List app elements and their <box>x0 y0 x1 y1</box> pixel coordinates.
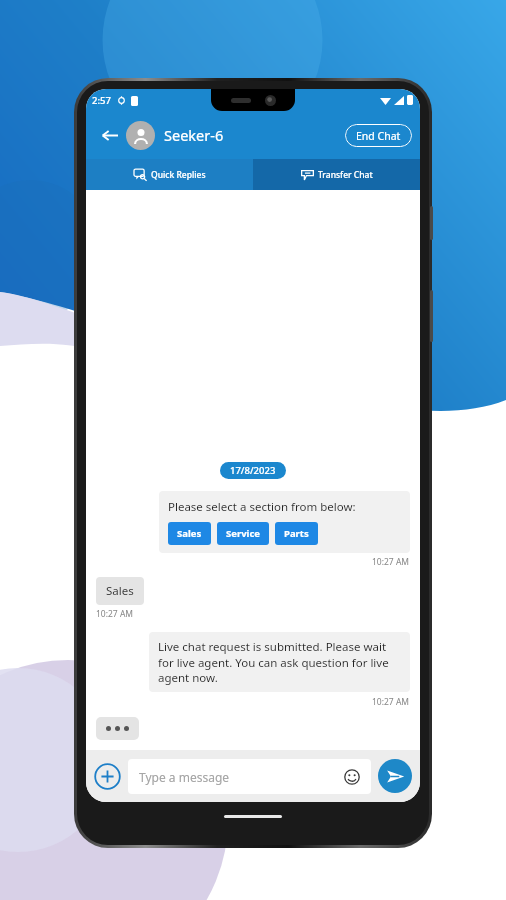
staticText: 17/8/2023 <box>230 464 276 477</box>
staticText: End Chat <box>356 129 401 143</box>
button[interactable]: Send <box>378 759 412 793</box>
button[interactable]: End Chat <box>345 124 412 147</box>
button[interactable]: Type a message <box>128 759 371 794</box>
button[interactable] <box>126 121 155 150</box>
staticText: Quick Replies <box>151 169 206 181</box>
button[interactable]: Add attachment <box>94 763 121 790</box>
staticText: Please select a section from below: <box>168 499 356 515</box>
button[interactable]: Service <box>217 522 269 545</box>
button[interactable]: Quick Replies <box>86 159 253 190</box>
staticText: 10:27 AM <box>96 608 134 620</box>
button[interactable]: Parts <box>275 522 318 545</box>
staticText: 2:57 <box>92 94 111 107</box>
staticText: 10:27 AM <box>372 556 410 568</box>
button[interactable]: Transfer Chat <box>253 159 420 190</box>
staticText: Sales <box>106 583 134 599</box>
button[interactable]: Back <box>94 120 124 150</box>
staticText: Service <box>226 527 260 540</box>
staticText: Parts <box>284 527 309 540</box>
staticText: Transfer Chat <box>318 169 373 181</box>
staticText: Type a message <box>139 769 230 785</box>
staticText: 10:27 AM <box>372 696 410 708</box>
staticText: Seeker-6 <box>164 125 224 145</box>
staticText: Sales <box>177 527 202 540</box>
button[interactable]: Sales <box>168 522 211 545</box>
staticText: Live chat request is submitted. Please w… <box>158 639 401 685</box>
